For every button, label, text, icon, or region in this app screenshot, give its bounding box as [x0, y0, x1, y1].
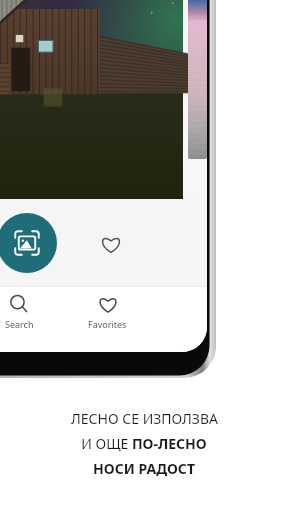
staticText: И ОЩЕ ПО-ЛЕСНО	[81, 434, 207, 453]
button[interactable]: Favorite	[96, 229, 126, 259]
button[interactable]: Favorites	[63, 286, 152, 352]
staticText: ЛЕСНО СЕ ИЗПОЛЗВА	[71, 409, 218, 428]
staticText: Favorites	[88, 318, 127, 330]
button[interactable]: Add photo	[0, 213, 57, 273]
button[interactable]: Search	[0, 286, 63, 352]
staticText: Search	[5, 318, 34, 330]
button[interactable]: Barn photo	[0, 0, 183, 199]
button[interactable]: Beach photo	[188, 0, 207, 159]
staticText: НОСИ РАДОСТ	[93, 459, 195, 478]
